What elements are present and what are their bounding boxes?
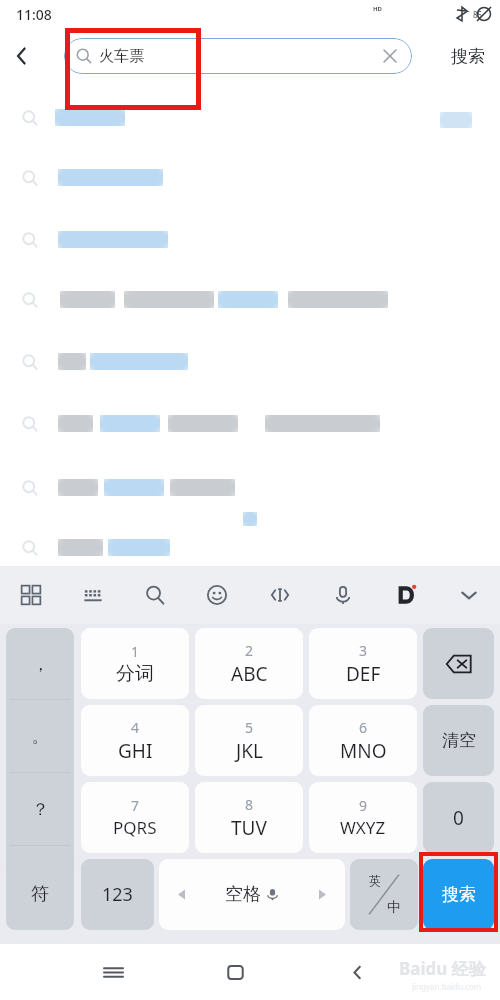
button[interactable]: Home <box>211 948 259 996</box>
button[interactable]: Search <box>124 566 186 624</box>
staticText: 11:08 <box>16 5 52 24</box>
button[interactable]: Emoji <box>186 566 248 624</box>
button[interactable]: 火车票 <box>64 38 412 74</box>
button[interactable]: 空格 <box>159 859 345 930</box>
button[interactable]: Hide keyboard <box>437 566 500 624</box>
button[interactable]: Backspace <box>423 628 494 699</box>
staticText: MNO <box>340 738 387 764</box>
button[interactable]: 123 <box>81 859 154 930</box>
button[interactable]: ， <box>6 628 74 700</box>
staticText: 分词 <box>116 662 154 686</box>
staticText: ？ <box>32 799 49 820</box>
staticText: 9 <box>359 796 368 815</box>
staticText: 中 <box>387 899 401 917</box>
button[interactable]: 搜索 <box>436 34 500 78</box>
staticText: 清空 <box>442 730 476 751</box>
button[interactable] <box>0 346 500 380</box>
button[interactable]: Apps <box>0 566 62 624</box>
staticText: DEF <box>346 661 381 687</box>
staticText: HD <box>373 5 382 13</box>
staticText: 空格 <box>225 883 261 906</box>
staticText: Baidu 经验 <box>399 957 486 980</box>
staticText: 5 <box>245 718 254 737</box>
staticText: 0 <box>453 805 464 831</box>
button[interactable]: 5 <box>195 705 303 776</box>
button[interactable] <box>0 102 500 136</box>
button[interactable]: Back <box>333 948 381 996</box>
staticText: 搜索 <box>442 884 476 905</box>
button[interactable] <box>0 284 500 318</box>
button[interactable] <box>0 532 500 566</box>
staticText: 1 <box>131 642 140 661</box>
button[interactable]: 2 <box>195 628 303 699</box>
staticText: ！ <box>32 872 49 893</box>
button[interactable]: Recents <box>89 948 137 996</box>
button[interactable]: 6 <box>309 705 417 776</box>
staticText: 6 <box>359 718 368 737</box>
staticText: 火车票 <box>99 47 144 66</box>
button[interactable]: 符 <box>6 859 74 930</box>
staticText: 。 <box>32 726 49 747</box>
button[interactable]: Text edit <box>248 566 311 624</box>
button[interactable]: 3 <box>309 628 417 699</box>
button[interactable]: 4 <box>81 705 189 776</box>
staticText: 符 <box>31 883 49 906</box>
button[interactable] <box>0 408 500 442</box>
staticText: TUV <box>231 815 267 841</box>
button[interactable]: ？ <box>6 773 74 846</box>
button[interactable]: 搜索 <box>423 859 494 930</box>
button[interactable]: 1 <box>81 628 189 699</box>
staticText: GHI <box>118 738 153 764</box>
button[interactable]: 8 <box>195 782 303 853</box>
button[interactable] <box>0 472 500 506</box>
staticText: 3 <box>359 641 368 660</box>
button[interactable]: 清空 <box>423 705 494 776</box>
staticText: jingyan.baidu.com <box>412 981 482 992</box>
button[interactable]: ！ <box>6 846 74 919</box>
staticText: 英 <box>369 873 381 888</box>
staticText: 8 <box>245 795 254 814</box>
button[interactable]: 9 <box>309 782 417 853</box>
staticText: 4 <box>131 718 140 737</box>
staticText: WXYZ <box>340 816 386 839</box>
button[interactable]: 。 <box>6 700 74 773</box>
staticText: 123 <box>102 882 133 907</box>
button[interactable] <box>0 162 500 196</box>
staticText: 85 <box>473 9 483 20</box>
button[interactable]: Dictionary <box>374 566 437 624</box>
staticText: 7 <box>131 796 140 815</box>
button[interactable]: Back <box>0 34 44 78</box>
button[interactable]: Clear <box>380 46 400 66</box>
button[interactable]: Keyboard layout <box>62 566 124 624</box>
staticText: PQRS <box>113 816 157 839</box>
staticText: JKL <box>236 738 263 764</box>
staticText: 搜索 <box>451 46 485 67</box>
staticText: ABC <box>231 661 268 687</box>
staticText: ， <box>32 654 49 675</box>
button[interactable]: Voice input <box>311 566 374 624</box>
button[interactable]: 0 <box>423 782 494 853</box>
button[interactable] <box>0 224 500 258</box>
button[interactable]: English Chinese toggle <box>350 859 418 930</box>
button[interactable]: 7 <box>81 782 189 853</box>
staticText: 2 <box>245 641 254 660</box>
